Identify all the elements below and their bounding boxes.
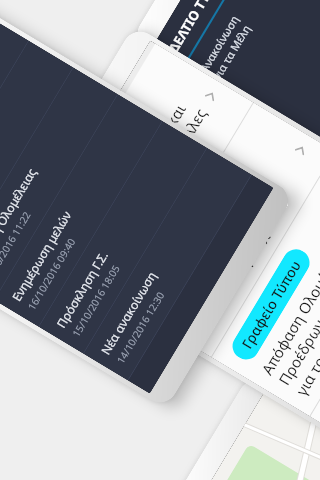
staticText: 17/10/2016 11:22 (0, 208, 34, 286)
button[interactable]: Γραφείο Τύπου (310, 211, 320, 465)
button[interactable]: Δελτίο Τύπου Δ.Σ.Α. (0, 41, 73, 273)
button[interactable]: Γραφείο Τύπου (212, 152, 320, 416)
staticText: Ενημέρωση μελών (8, 207, 75, 304)
staticText: 15/10/2016 18:05 (69, 262, 123, 339)
button[interactable]: Νέα ανακοίνωση (84, 148, 251, 380)
staticText: Πρόσκληση Γ.Σ. (53, 248, 111, 331)
staticText: αποφάσεις (111, 215, 167, 291)
staticText: Νέα ανακοίνωση (97, 268, 159, 357)
staticText: 14/10/2016 12:30 (113, 289, 168, 366)
staticText: Απ. Ολομέλειας (57, 146, 126, 244)
staticText: Ανακοίνωση για τα Μέλη (193, 13, 255, 87)
staticText: Απόφαση Ολομέλειας των (257, 212, 320, 378)
staticText: Αποφάσεις Δ.Σ. (156, 206, 224, 303)
button[interactable]: Απόφαση Ολομέλειας (0, 68, 117, 300)
staticText: Προέδρων στη Βουλή (274, 249, 320, 389)
staticText: Γραφείο Τύπου (237, 257, 305, 352)
staticText: Παράταση αποχής έως και (77, 100, 190, 270)
staticText: Νέα σειρά ενεργειών (175, 195, 267, 329)
button[interactable]: Απ. Ολομέλειας (32, 43, 253, 308)
staticText: 16/10/2016 09:40 (24, 235, 78, 312)
button[interactable]: Πρόσκληση Γ.Σ. (39, 121, 206, 353)
button[interactable]: Ανακοίνωση Προέδρου (0, 14, 28, 246)
staticText: τις 25 Οκτωβρίου και άλλες (94, 104, 211, 280)
staticText: για το νομοσχέδιο (291, 279, 320, 399)
staticText: Απόφαση Ολομέλειας (0, 165, 39, 277)
button[interactable]: Ενημέρωση μελών (0, 95, 162, 327)
staticText: ΔΕΛΤΙΟ ΤΥΠΟΥ (161, 0, 228, 61)
staticText: κατά του νομοσχεδίου (192, 194, 291, 340)
button[interactable]: Αποφάσεις Δ.Σ. (130, 103, 320, 357)
